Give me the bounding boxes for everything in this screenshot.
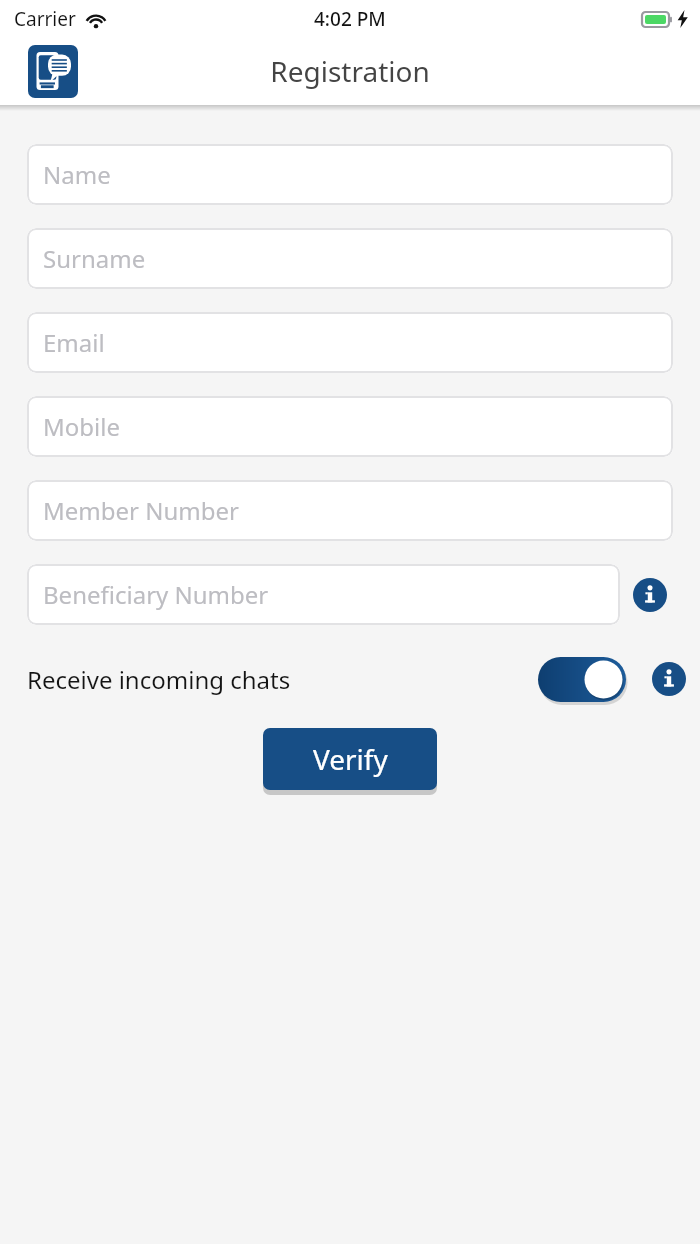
staticText: Email bbox=[43, 326, 105, 359]
staticText: Mobile bbox=[43, 410, 120, 443]
staticText: 4:02 PM bbox=[314, 6, 386, 32]
button[interactable]: Member Number bbox=[27, 480, 673, 541]
button[interactable]: Email bbox=[27, 312, 673, 373]
staticText: Carrier bbox=[14, 6, 76, 32]
button[interactable]: More information bbox=[633, 578, 667, 612]
staticText: Verify bbox=[313, 740, 388, 778]
button[interactable]: Verify bbox=[263, 728, 437, 790]
staticText: Registration bbox=[270, 52, 430, 90]
staticText: Beneficiary Number bbox=[43, 578, 269, 611]
button[interactable]: Name bbox=[27, 144, 673, 205]
button[interactable]: Receive incoming chats toggle bbox=[538, 657, 626, 702]
button[interactable]: Surname bbox=[27, 228, 673, 289]
button[interactable]: More information bbox=[652, 662, 686, 696]
staticText: Surname bbox=[43, 242, 146, 275]
staticText: Receive incoming chats bbox=[27, 663, 291, 696]
staticText: Name bbox=[43, 158, 111, 191]
button[interactable]: Beneficiary Number bbox=[27, 564, 620, 625]
button[interactable]: App logo bbox=[28, 45, 78, 98]
button[interactable]: Mobile bbox=[27, 396, 673, 457]
staticText: Member Number bbox=[43, 494, 239, 527]
